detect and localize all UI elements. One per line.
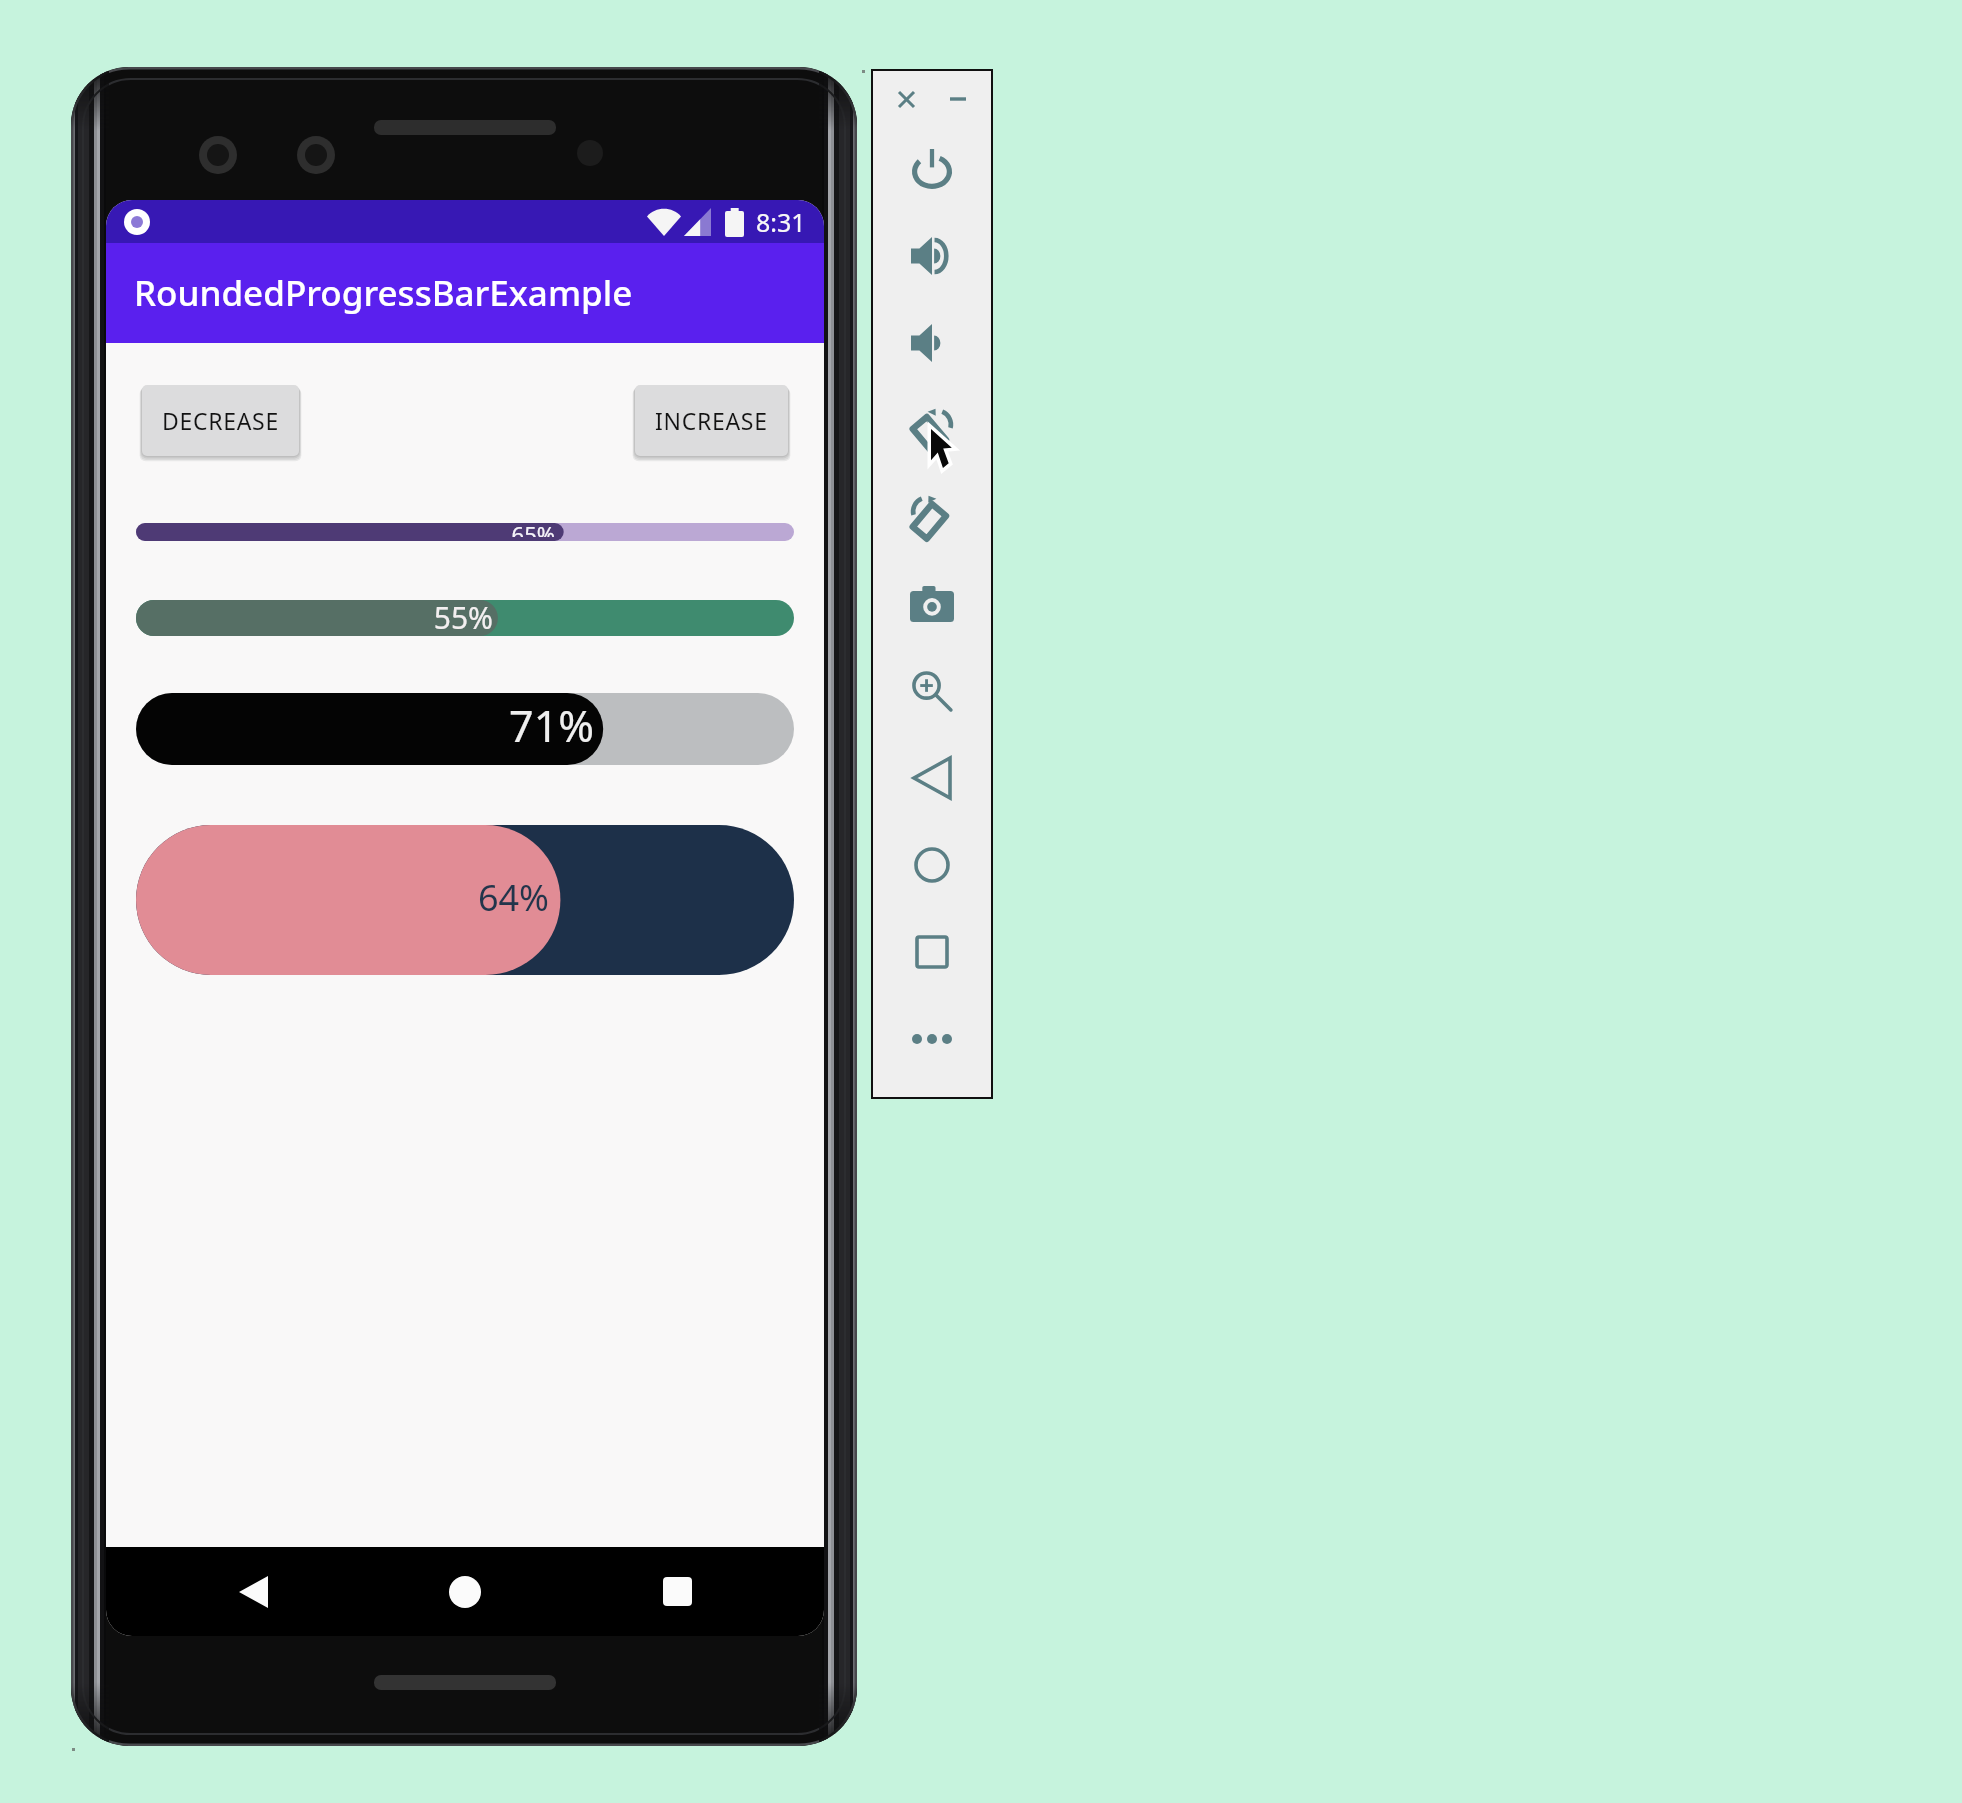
button[interactable]: Volume up xyxy=(873,212,991,299)
button[interactable]: Rotate left xyxy=(873,386,991,473)
staticText: 64% xyxy=(136,873,549,922)
button[interactable]: Minimize xyxy=(941,82,975,116)
staticText: 71% xyxy=(136,696,594,755)
button[interactable]: Power xyxy=(873,125,991,212)
button[interactable]: DECREASE xyxy=(142,385,299,456)
staticText: 8:31 xyxy=(756,205,806,239)
button[interactable]: Back xyxy=(873,734,991,821)
button[interactable]: INCREASE xyxy=(635,385,788,456)
button[interactable]: More xyxy=(873,995,991,1082)
button[interactable]: 64% xyxy=(136,825,794,975)
staticText: DECREASE xyxy=(162,405,279,436)
button[interactable]: Recent apps xyxy=(571,1547,783,1636)
staticText: 55% xyxy=(136,597,493,633)
button[interactable]: RoundedProgressBarExample xyxy=(106,243,824,343)
staticText: 65% xyxy=(136,519,555,537)
button[interactable]: Close xyxy=(889,82,923,116)
button[interactable]: Take screenshot xyxy=(873,560,991,647)
button[interactable]: Home xyxy=(359,1547,571,1636)
button[interactable]: 65% xyxy=(136,523,794,541)
button[interactable]: Overview xyxy=(873,908,991,995)
button[interactable]: Back xyxy=(147,1547,359,1636)
button[interactable]: Volume down xyxy=(873,299,991,386)
button[interactable]: Zoom xyxy=(873,647,991,734)
button[interactable]: 71% xyxy=(136,693,794,765)
button[interactable]: Rotate right xyxy=(873,473,991,560)
button[interactable]: Home xyxy=(873,821,991,908)
staticText: RoundedProgressBarExample xyxy=(134,269,633,317)
button[interactable]: 55% xyxy=(136,600,794,636)
staticText: INCREASE xyxy=(655,405,768,436)
